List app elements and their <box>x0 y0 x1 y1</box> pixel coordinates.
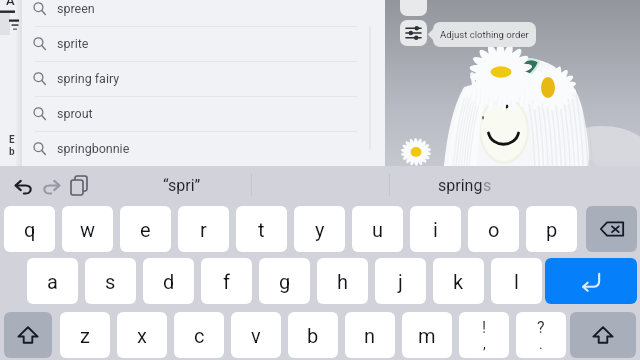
button[interactable]: spreen <box>22 0 385 26</box>
staticText: u <box>372 218 384 241</box>
staticText: g <box>279 270 291 293</box>
button[interactable]: q <box>4 206 55 252</box>
button[interactable]: ? <box>516 312 566 358</box>
button[interactable]: “spri” <box>150 172 214 198</box>
staticText: j <box>398 270 403 293</box>
staticText: f <box>223 270 230 293</box>
staticText: “spri” <box>163 176 201 195</box>
staticText: sprite <box>57 36 89 51</box>
button[interactable]: u <box>352 206 403 252</box>
staticText: s <box>483 176 492 195</box>
staticText: x <box>137 324 147 347</box>
button[interactable]: x <box>117 312 167 358</box>
staticText: o <box>488 218 500 241</box>
button[interactable]: springbonnie <box>22 131 385 166</box>
button[interactable]: h <box>317 258 368 304</box>
button[interactable]: spring <box>430 172 500 198</box>
button[interactable]: Avatar options <box>400 0 427 16</box>
staticText: n <box>364 324 376 347</box>
button[interactable]: k <box>433 258 484 304</box>
button[interactable]: s <box>85 258 136 304</box>
button[interactable]: sprite <box>22 26 385 61</box>
staticText: l <box>514 270 519 293</box>
button[interactable]: ! <box>459 312 509 358</box>
staticText: p <box>546 218 558 241</box>
staticText: t <box>258 218 265 241</box>
staticText: . <box>539 336 543 352</box>
staticText: ! <box>482 318 487 337</box>
button[interactable]: z <box>60 312 110 358</box>
button[interactable]: m <box>402 312 452 358</box>
button[interactable]: w <box>62 206 113 252</box>
button[interactable]: n <box>345 312 395 358</box>
staticText: d <box>163 270 175 293</box>
staticText: w <box>80 218 96 241</box>
button[interactable]: f <box>201 258 252 304</box>
staticText: q <box>24 218 36 241</box>
button[interactable]: y <box>294 206 345 252</box>
button[interactable]: Adjust clothing order <box>400 20 427 46</box>
staticText: h <box>337 270 349 293</box>
staticText: springbonnie <box>57 141 130 156</box>
button[interactable]: p <box>526 206 577 252</box>
button[interactable]: r <box>178 206 229 252</box>
staticText: z <box>80 324 90 347</box>
staticText: ? <box>537 318 545 337</box>
button[interactable]: Backspace <box>586 206 637 252</box>
staticText: i <box>433 218 438 241</box>
staticText: b <box>9 146 15 158</box>
staticText: m <box>418 324 436 347</box>
staticText: Adjust clothing order <box>440 29 529 40</box>
staticText: b <box>307 324 319 347</box>
button[interactable]: b <box>288 312 338 358</box>
button[interactable]: sprout <box>22 96 385 131</box>
staticText: sprout <box>57 106 93 121</box>
button[interactable]: v <box>231 312 281 358</box>
button[interactable]: Shift <box>4 312 52 358</box>
button[interactable]: j <box>375 258 426 304</box>
button[interactable]: e <box>120 206 171 252</box>
button[interactable]: Undo <box>13 175 34 196</box>
button[interactable]: a <box>27 258 78 304</box>
staticText: spring <box>438 176 483 195</box>
button[interactable]: o <box>468 206 519 252</box>
staticText: v <box>251 324 261 347</box>
button[interactable]: Redo <box>41 175 62 196</box>
staticText: e <box>140 218 151 241</box>
button[interactable]: c <box>174 312 224 358</box>
button[interactable]: t <box>236 206 287 252</box>
button[interactable]: Clipboard <box>69 175 90 196</box>
button[interactable]: Shift <box>570 312 636 358</box>
staticText: spring fairy <box>57 71 120 86</box>
button[interactable]: spring fairy <box>22 61 385 96</box>
button[interactable]: Adjust clothing order <box>433 22 536 47</box>
button[interactable]: i <box>410 206 461 252</box>
staticText: A <box>6 0 15 8</box>
staticText: k <box>453 270 464 293</box>
button[interactable]: Enter <box>545 258 637 304</box>
button[interactable]: l <box>491 258 542 304</box>
staticText: y <box>315 218 325 241</box>
staticText: r <box>200 218 207 241</box>
staticText: E <box>9 134 15 146</box>
staticText: spreen <box>57 1 95 16</box>
staticText: s <box>105 270 116 293</box>
staticText: c <box>194 324 205 347</box>
staticText: a <box>47 270 58 293</box>
button[interactable]: d <box>143 258 194 304</box>
button[interactable]: g <box>259 258 310 304</box>
staticText: , <box>483 336 486 352</box>
